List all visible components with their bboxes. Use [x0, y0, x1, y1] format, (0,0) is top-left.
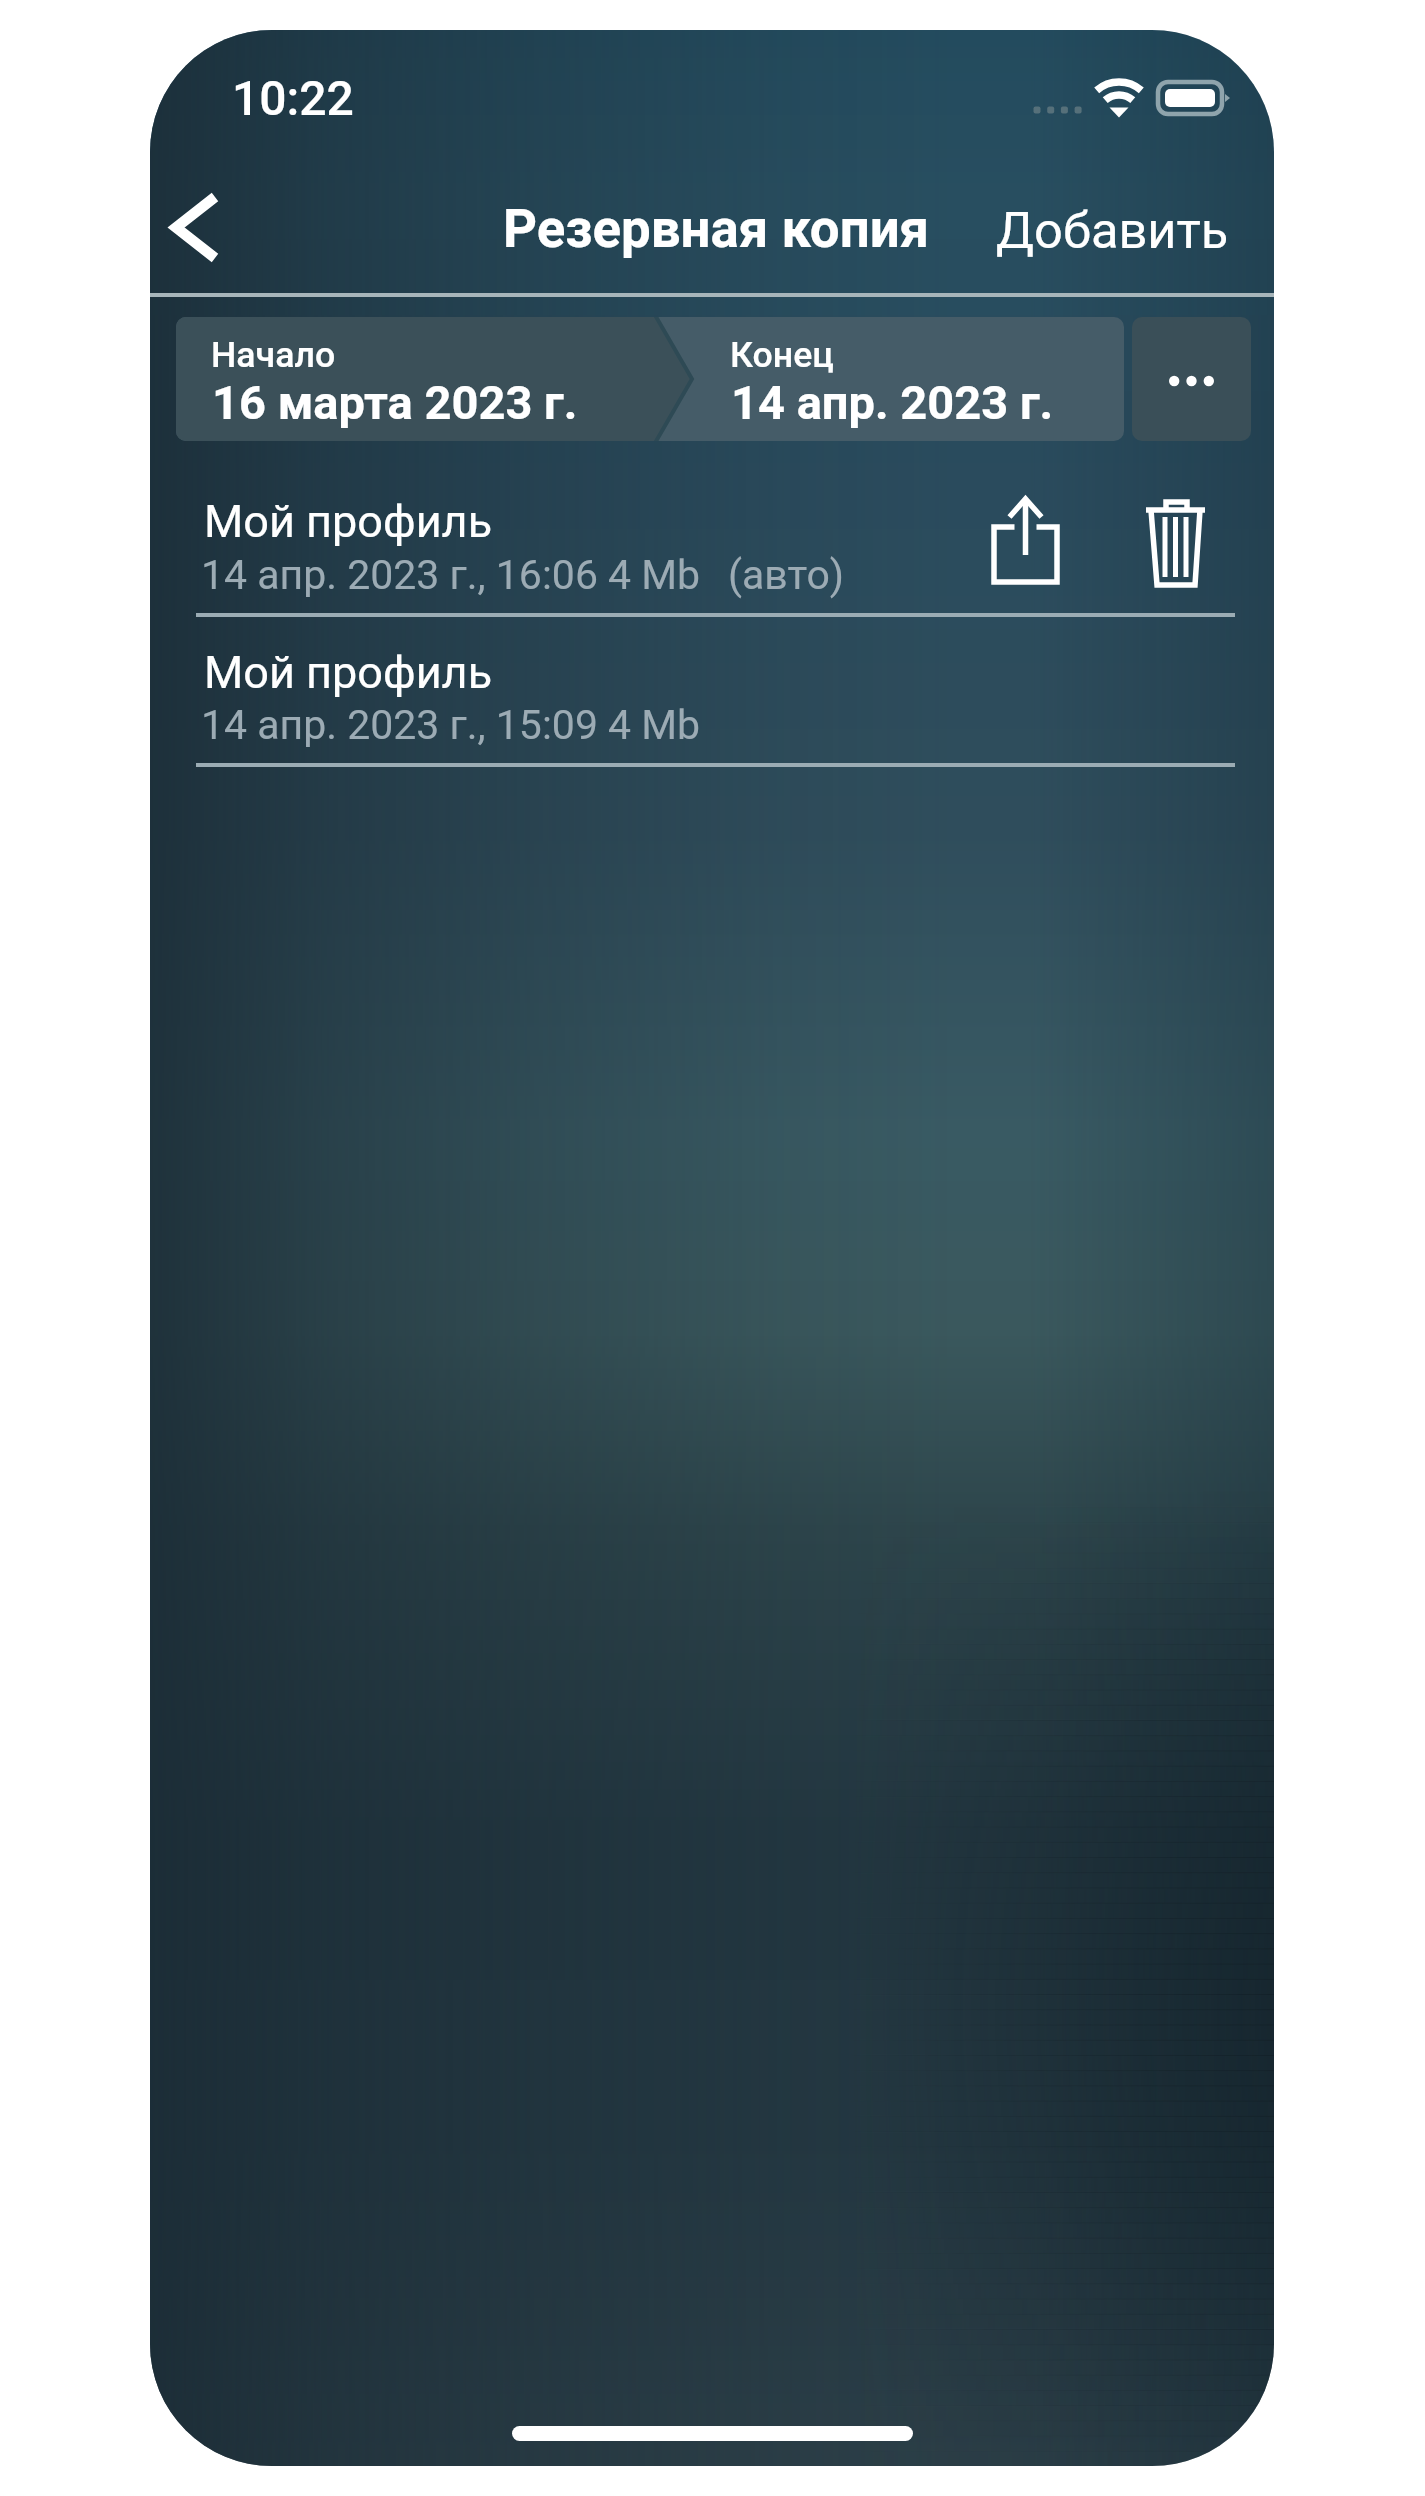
staticText: Мой профиль [204, 495, 493, 548]
button[interactable]: Добавить [970, 170, 1250, 280]
staticText: 16 марта 2023 г. [212, 375, 578, 430]
staticText: 14 апр. 2023 г., 15:09 4 Mb [201, 701, 701, 749]
staticText: Мой профиль [204, 646, 493, 699]
button[interactable]: Back [150, 180, 260, 290]
button[interactable]: Delete [1109, 474, 1235, 600]
button[interactable]: Мой профиль [150, 460, 1274, 616]
button[interactable]: Share [962, 474, 1088, 600]
staticText: Конец [730, 334, 834, 376]
button[interactable]: More options [1132, 317, 1251, 441]
staticText: 14 апр. 2023 г. [731, 375, 1054, 430]
button[interactable]: Мой профиль [150, 616, 1274, 766]
staticText: Резервная копия [503, 198, 930, 260]
staticText: 14 апр. 2023 г., 16:06 4 Mb [201, 551, 701, 599]
staticText: Добавить [996, 201, 1229, 260]
staticText: Начало [211, 334, 336, 376]
staticText: 10:22 [232, 70, 354, 126]
button[interactable]: Начало [176, 317, 1124, 441]
staticText: (авто) [728, 551, 845, 599]
